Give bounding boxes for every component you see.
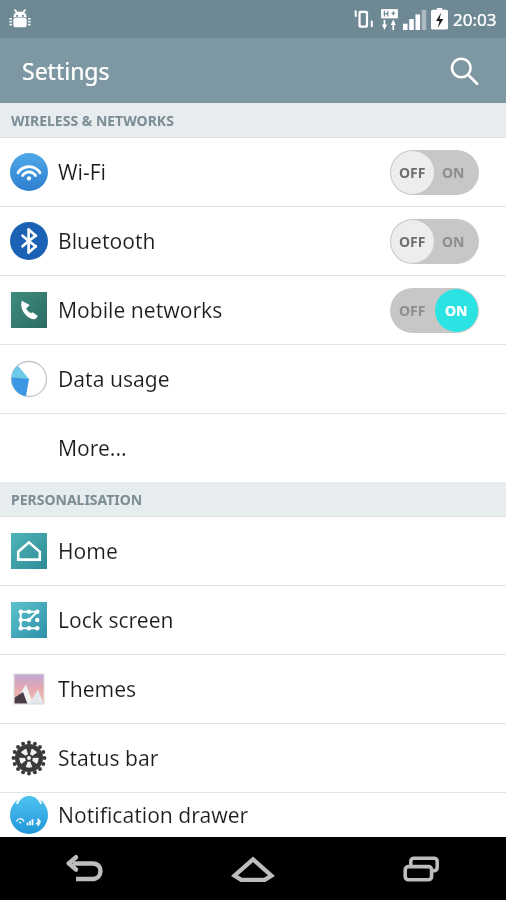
staticText: Lock screen xyxy=(58,606,506,635)
button[interactable]: OFF xyxy=(390,288,479,333)
button[interactable]: Wi-Fi xyxy=(0,138,506,206)
staticText: Themes xyxy=(58,675,506,704)
staticText: ON xyxy=(442,232,465,251)
staticText: 20:03 xyxy=(453,8,497,31)
staticText: OFF xyxy=(399,232,426,251)
staticText: OFF xyxy=(399,163,426,182)
button[interactable]: Data usage xyxy=(0,345,506,413)
button[interactable]: Status bar xyxy=(0,724,506,792)
button[interactable]: Lock screen xyxy=(0,586,506,654)
staticText: Mobile networks xyxy=(58,296,390,325)
button[interactable]: More... xyxy=(0,414,506,482)
staticText: Notification drawer xyxy=(58,801,506,830)
staticText: OFF xyxy=(399,301,426,320)
staticText: Status bar xyxy=(58,744,506,773)
button[interactable]: Notification drawer xyxy=(0,793,506,837)
button[interactable]: Bluetooth xyxy=(0,207,506,275)
staticText: Data usage xyxy=(58,365,506,394)
button[interactable]: OFF xyxy=(390,219,479,264)
staticText: More... xyxy=(58,434,506,463)
staticText: ON xyxy=(442,301,465,320)
button[interactable]: Home xyxy=(0,517,506,585)
button[interactable]: OFF xyxy=(390,150,479,195)
button[interactable]: Themes xyxy=(0,655,506,723)
button[interactable]: Mobile networks xyxy=(0,276,506,344)
staticText: Wi-Fi xyxy=(58,158,390,187)
staticText: PERSONALISATION xyxy=(11,490,143,509)
staticText: Bluetooth xyxy=(58,227,390,256)
staticText: Home xyxy=(58,537,506,566)
staticText: OFF xyxy=(399,232,426,251)
staticText: ON xyxy=(442,163,465,182)
button[interactable]: Back xyxy=(0,837,168,900)
button[interactable]: Search xyxy=(440,47,488,95)
staticText: WIRELESS & NETWORKS xyxy=(11,111,174,130)
button[interactable]: Home xyxy=(168,837,337,900)
staticText: ON xyxy=(445,301,468,320)
staticText: Settings xyxy=(22,55,110,86)
staticText: OFF xyxy=(399,163,426,182)
button[interactable]: Recent apps xyxy=(337,837,506,900)
